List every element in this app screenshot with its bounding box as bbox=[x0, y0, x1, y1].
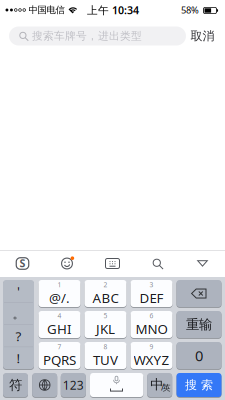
staticText: 3 bbox=[149, 280, 153, 289]
staticText: DEF bbox=[139, 289, 163, 307]
button[interactable]: 切换键盘 bbox=[32, 373, 57, 397]
staticText: WXYZ bbox=[133, 351, 169, 369]
button[interactable]: 重输 bbox=[176, 311, 221, 338]
button[interactable]: 中 bbox=[147, 373, 172, 397]
button[interactable]: 搜索 bbox=[144, 252, 170, 274]
staticText: JKL bbox=[96, 320, 115, 338]
button[interactable]: 符 bbox=[3, 373, 28, 397]
button[interactable]: 5 bbox=[84, 311, 126, 338]
button[interactable]: 7 bbox=[38, 342, 80, 369]
button[interactable]: 收起键盘 bbox=[189, 252, 215, 274]
button[interactable]: 空格 bbox=[90, 373, 143, 397]
button[interactable]: 0 bbox=[176, 342, 221, 369]
staticText: 取消 bbox=[190, 29, 214, 43]
staticText: S bbox=[19, 256, 25, 270]
staticText: 英 bbox=[162, 383, 170, 393]
staticText: 1 bbox=[57, 280, 61, 289]
button[interactable]: 8 bbox=[84, 342, 126, 369]
button[interactable]: 6 bbox=[130, 311, 172, 338]
staticText: 2 bbox=[103, 280, 107, 289]
staticText: @/. bbox=[49, 289, 70, 307]
staticText: MNO bbox=[135, 320, 167, 338]
staticText: 7 bbox=[57, 342, 61, 351]
button[interactable]: 3 bbox=[130, 280, 172, 307]
button[interactable]: 123 bbox=[61, 373, 86, 397]
button[interactable]: 4 bbox=[38, 311, 80, 338]
staticText: 符 bbox=[9, 377, 22, 393]
button[interactable]: 1 bbox=[38, 280, 80, 307]
button[interactable]: 删除 bbox=[176, 280, 221, 307]
button[interactable]: 键盘切换 bbox=[99, 252, 125, 274]
staticText: 123 bbox=[63, 377, 84, 393]
button[interactable]: 搜 索 bbox=[176, 373, 221, 397]
staticText: TUV bbox=[93, 351, 118, 369]
button[interactable]: 搜索 bbox=[9, 26, 186, 45]
staticText: 6 bbox=[149, 311, 153, 320]
button[interactable]: 2 bbox=[84, 280, 126, 307]
button[interactable]: 9 bbox=[130, 342, 172, 369]
staticText: ? bbox=[15, 327, 21, 345]
staticText: 搜 索 bbox=[185, 378, 213, 392]
staticText: 搜索车牌号，进出类型 bbox=[32, 29, 142, 42]
staticText: ABC bbox=[92, 289, 118, 307]
button[interactable]: 取消 bbox=[187, 26, 217, 45]
staticText: ! bbox=[16, 349, 20, 367]
button[interactable]: 搜狗输入法 bbox=[9, 252, 35, 274]
staticText: 。 bbox=[12, 307, 24, 321]
staticText: 0 bbox=[195, 346, 203, 365]
staticText: PQRS bbox=[43, 351, 76, 369]
staticText: 5 bbox=[103, 311, 107, 320]
staticText: 中 bbox=[150, 376, 163, 393]
staticText: / bbox=[161, 381, 164, 393]
staticText: GHI bbox=[47, 320, 72, 338]
staticText: 重输 bbox=[186, 316, 212, 333]
button[interactable]: 表情 bbox=[54, 252, 80, 274]
staticText: 9 bbox=[149, 342, 153, 351]
staticText: 4 bbox=[57, 311, 61, 320]
staticText: 58% bbox=[181, 4, 199, 16]
staticText: 8 bbox=[103, 342, 107, 351]
staticText: 上午 10:34 bbox=[87, 3, 139, 17]
staticText: ' bbox=[17, 282, 20, 300]
staticText: 中国电信 bbox=[28, 4, 64, 16]
button[interactable]: 符号 bbox=[3, 280, 34, 369]
